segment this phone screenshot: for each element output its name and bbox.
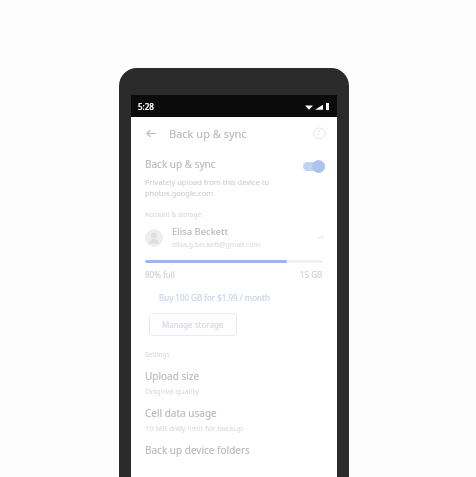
staticText: Elisa Beckett	[172, 225, 228, 238]
staticText: Back up device folders	[145, 443, 250, 457]
button[interactable]: Back up and sync toggle	[301, 159, 327, 173]
staticText: ?	[317, 128, 321, 138]
staticText: Settings	[145, 350, 170, 359]
button[interactable]: Back up & sync	[131, 149, 337, 204]
staticText: Upload size	[145, 369, 200, 383]
staticText: Buy 100 GB for $1.99 / month	[159, 292, 270, 303]
staticText: Manage storage	[162, 319, 224, 330]
staticText: 5:28	[138, 101, 154, 112]
button[interactable]: Buy 100 GB for $1.99 / month	[155, 290, 274, 305]
button[interactable]: Cell data usage	[131, 396, 337, 433]
button[interactable]: Elisa Beckett	[131, 219, 337, 254]
staticText: 10 MB daily limit for backup	[145, 423, 243, 433]
staticText: 15 GB	[300, 269, 323, 280]
button[interactable]: Help	[309, 123, 329, 143]
staticText: Back up & sync	[145, 157, 216, 171]
button[interactable]: Manage storage	[149, 313, 237, 336]
staticText: Privately upload from this device to pho…	[145, 177, 270, 198]
staticText: Account & storage	[145, 210, 202, 219]
button[interactable]: Upload size	[131, 359, 337, 396]
staticText: elisa.g.beckett@gmail.com	[172, 240, 260, 250]
staticText: Cell data usage	[145, 406, 217, 420]
staticText: Original quality	[145, 386, 200, 396]
staticText: Back up & sync	[169, 126, 309, 141]
button[interactable]: Back	[139, 122, 161, 144]
button[interactable]: Back up device folders	[131, 433, 337, 457]
staticText: 80% full	[145, 269, 175, 280]
